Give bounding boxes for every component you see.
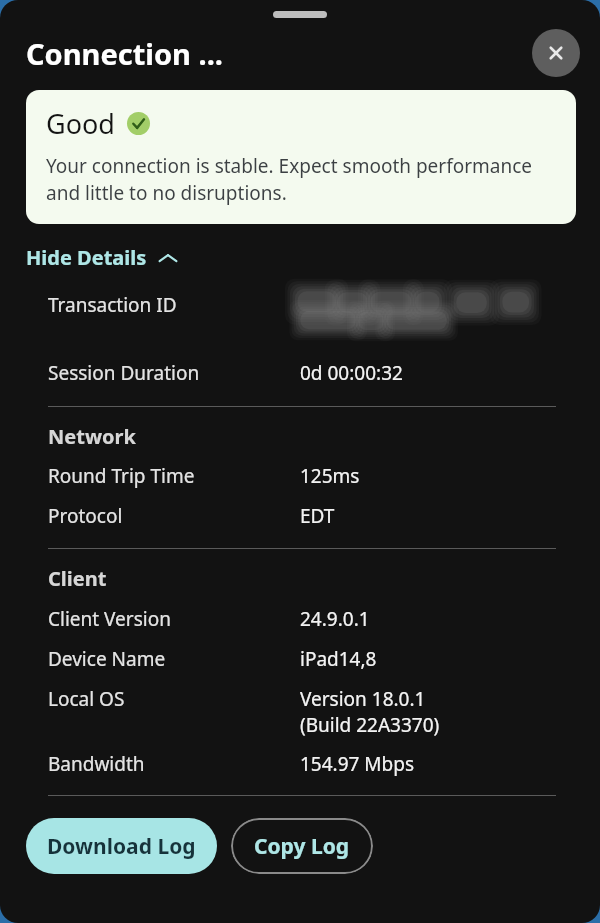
staticText: Version 18.0.1 (Build 22A3370)	[300, 686, 440, 737]
staticText: Network	[48, 423, 136, 450]
staticText: Bandwidth	[48, 751, 145, 777]
staticText: 125ms	[300, 463, 360, 489]
button[interactable]: Copy Log	[231, 818, 373, 874]
staticText: Hide Details	[26, 244, 147, 271]
button[interactable]: Download Log	[26, 818, 217, 874]
button[interactable]: Close	[532, 29, 580, 77]
staticText: 154.97 Mbps	[300, 751, 415, 777]
staticText: Good	[46, 105, 115, 142]
staticText: Download Log	[47, 832, 196, 861]
staticText: EDT	[300, 503, 335, 529]
staticText: iPad14,8	[300, 646, 377, 672]
staticText: Connection ...	[26, 34, 223, 73]
staticText: Copy Log	[254, 832, 350, 861]
staticText: 0d 00:00:32	[300, 360, 403, 386]
button[interactable]: Hide Details	[26, 244, 178, 271]
staticText: Session Duration	[48, 360, 200, 386]
staticText: Device Name	[48, 646, 166, 672]
staticText: 24.9.0.1	[300, 606, 370, 632]
staticText: Client Version	[48, 606, 171, 632]
staticText: Round Trip Time	[48, 463, 195, 489]
staticText: Your connection is stable. Expect smooth…	[46, 153, 558, 206]
staticText: Protocol	[48, 503, 123, 529]
staticText: Transaction ID	[48, 292, 177, 318]
staticText: Client	[48, 565, 107, 592]
staticText: Local OS	[48, 686, 125, 712]
